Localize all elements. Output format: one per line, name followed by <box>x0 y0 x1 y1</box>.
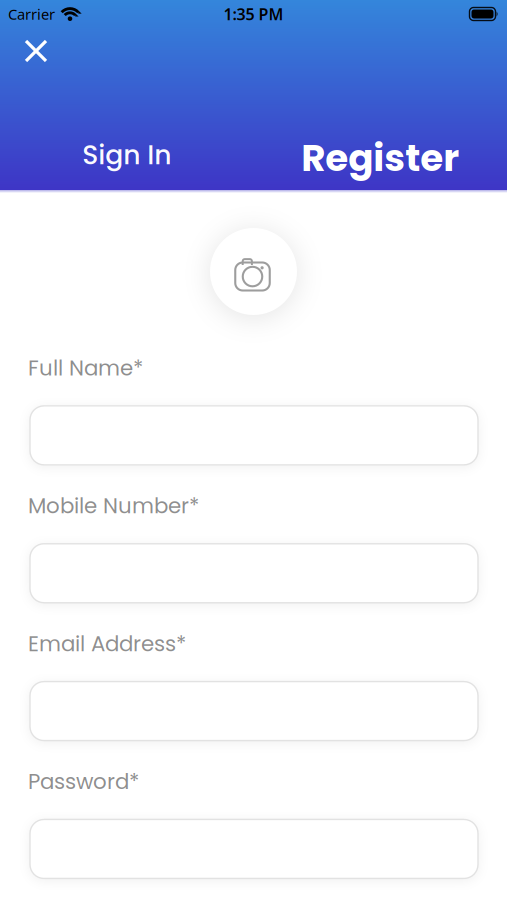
staticText: Email Address* <box>28 629 186 659</box>
button[interactable]: Mobile Number* <box>30 544 478 603</box>
button[interactable]: Register <box>253 132 507 184</box>
staticText: Password* <box>28 767 139 796</box>
button[interactable]: Sign In <box>0 139 253 176</box>
button[interactable]: Add profile photo <box>210 228 297 315</box>
staticText: Sign In <box>82 136 171 173</box>
staticText: 1:35 PM <box>223 3 283 25</box>
staticText: Carrier <box>8 4 55 24</box>
button[interactable]: Full Name* <box>30 406 478 465</box>
button[interactable]: Close <box>17 32 55 70</box>
staticText: Register <box>301 132 459 184</box>
staticText: Mobile Number* <box>28 491 199 521</box>
staticText: Full Name* <box>28 353 143 383</box>
button[interactable]: Email Address* <box>30 682 478 741</box>
